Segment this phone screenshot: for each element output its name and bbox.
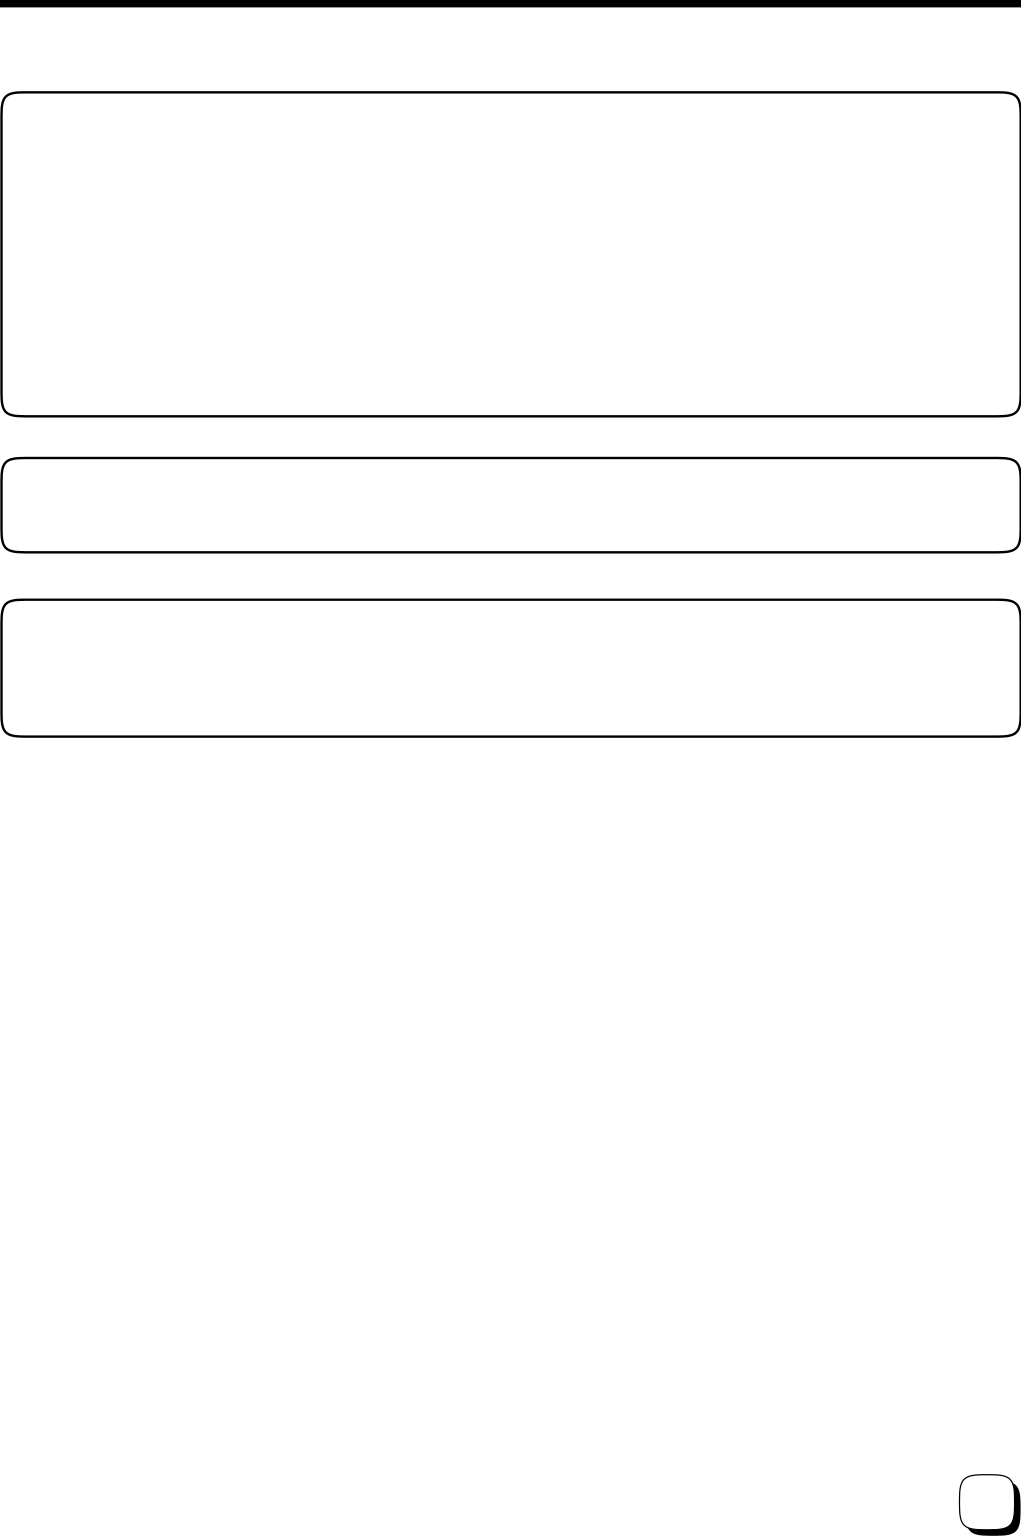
button[interactable]: Third item <box>1 600 1021 737</box>
button[interactable]: Second item <box>1 458 1021 552</box>
button[interactable]: Featured <box>1 92 1021 416</box>
button[interactable]: Compose <box>959 1475 1021 1536</box>
